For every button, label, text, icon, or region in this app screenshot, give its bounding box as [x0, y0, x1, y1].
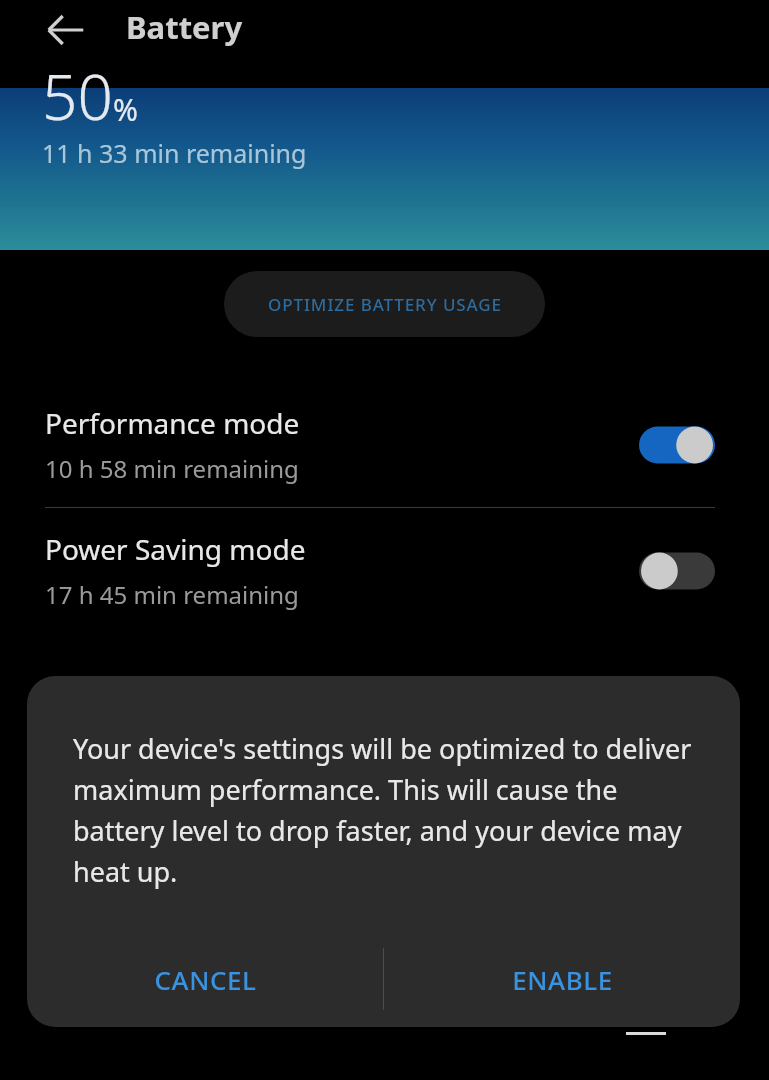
staticText: ENABLE	[512, 962, 613, 997]
button[interactable]: Performance mode	[0, 382, 769, 507]
staticText: Your device's settings will be optimized…	[73, 730, 700, 890]
button[interactable]: Power Saving mode	[0, 508, 769, 633]
staticText: CANCEL	[154, 962, 257, 997]
staticText: %	[113, 89, 138, 130]
staticText: 17 h 45 min remaining	[45, 578, 299, 611]
staticText: 50	[42, 54, 113, 138]
button[interactable]: Back	[42, 6, 90, 54]
staticText: 11 h 33 min remaining	[42, 136, 307, 170]
staticText: Battery	[126, 6, 243, 48]
button[interactable]: CANCEL	[27, 931, 383, 1027]
staticText: 10 h 58 min remaining	[45, 452, 299, 485]
staticText: OPTIMIZE BATTERY USAGE	[268, 293, 502, 316]
staticText: Performance mode	[45, 404, 300, 442]
button[interactable]: OPTIMIZE BATTERY USAGE	[224, 271, 545, 337]
button[interactable]: Battery usage	[0, 974, 769, 1044]
staticText: Power Saving mode	[45, 530, 306, 568]
button[interactable]: ENABLE	[384, 931, 740, 1027]
